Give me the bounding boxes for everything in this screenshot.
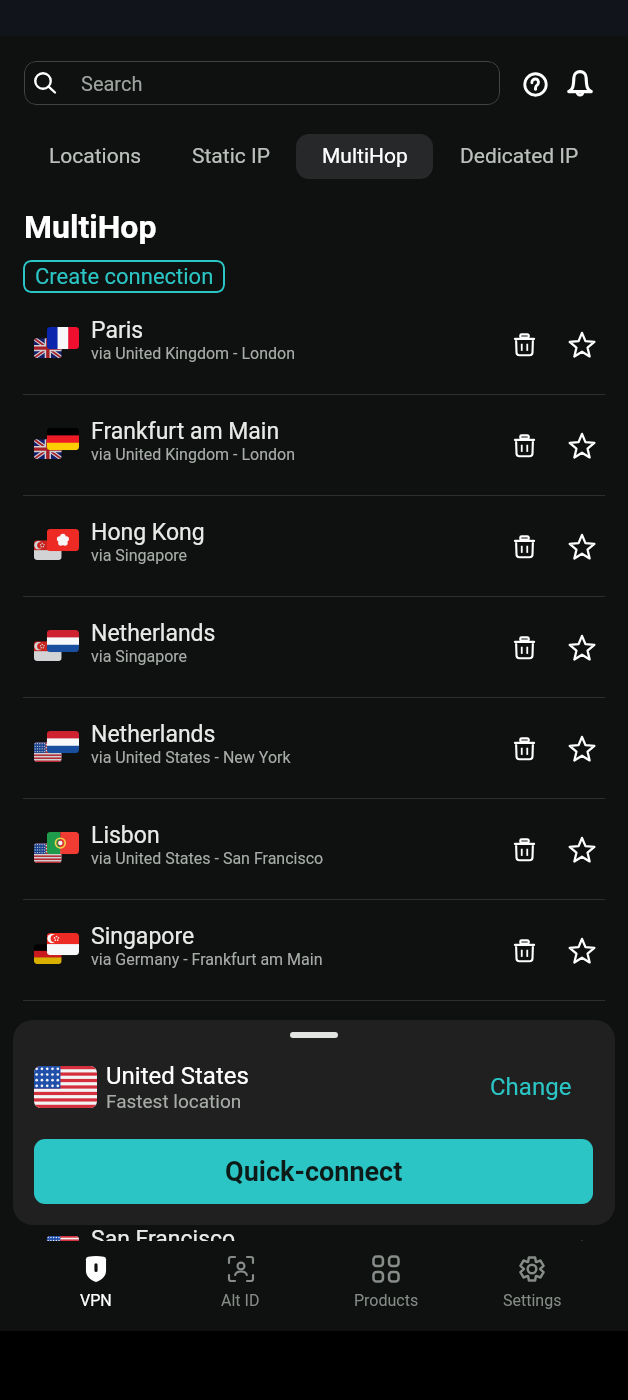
button[interactable]: San Francisco	[0, 1203, 628, 1303]
staticText: Netherlands	[91, 721, 216, 748]
button[interactable]: Netherlands	[0, 698, 628, 798]
staticText: Fastest location	[106, 1090, 242, 1112]
button[interactable]: Paris	[0, 294, 628, 394]
staticText: Dedicated IP	[460, 144, 579, 169]
staticText: MultiHop	[24, 208, 157, 246]
staticText: Alt ID	[221, 1291, 260, 1310]
staticText: Lisbon	[91, 822, 160, 849]
staticText: MultiHop	[322, 144, 408, 169]
staticText: Paris	[91, 317, 144, 344]
staticText: Hong Kong	[91, 519, 205, 546]
staticText: via United States - San Francisco	[91, 849, 324, 868]
staticText: United States	[106, 1062, 249, 1090]
button[interactable]: Delete	[501, 826, 548, 873]
button[interactable]: Delete	[501, 927, 548, 974]
button[interactable]: MultiHop	[296, 134, 433, 179]
button[interactable]: Settings	[459, 1241, 605, 1331]
button[interactable]: Create connection	[23, 260, 225, 293]
button[interactable]: Alt ID	[168, 1241, 313, 1331]
button[interactable]: Favourite	[558, 624, 605, 671]
button[interactable]: Favourite	[558, 422, 605, 469]
button[interactable]: Favourite	[558, 826, 605, 873]
staticText: Static IP	[192, 144, 270, 169]
staticText: Frankfurt am Main	[91, 418, 280, 445]
button[interactable]: Netherlands	[0, 597, 628, 697]
button[interactable]: Favourite	[558, 927, 605, 974]
button[interactable]: Delete	[501, 1230, 548, 1277]
staticText: Quick-connect	[225, 1156, 403, 1188]
staticText: Singapore	[91, 923, 195, 950]
button[interactable]: Stockholm	[0, 1001, 628, 1101]
button[interactable]: Toronto	[0, 1102, 628, 1202]
button[interactable]: Static IP	[181, 134, 281, 179]
staticText: Search	[81, 72, 143, 95]
button[interactable]: Delete	[501, 422, 548, 469]
button[interactable]: Delete	[501, 624, 548, 671]
staticText: Toronto	[91, 1125, 171, 1152]
button[interactable]: VPN	[23, 1241, 168, 1331]
button[interactable]: Singapore	[0, 900, 628, 1000]
button[interactable]: Frankfurt am Main	[0, 395, 628, 495]
staticText: San Francisco	[91, 1226, 236, 1253]
button[interactable]: Change	[482, 1065, 580, 1109]
button[interactable]: Products	[313, 1241, 459, 1331]
button[interactable]: Search	[24, 61, 500, 105]
staticText: VPN	[80, 1291, 112, 1310]
button[interactable]: Delete	[501, 321, 548, 368]
button[interactable]: Favourite	[558, 321, 605, 368]
button[interactable]: Hong Kong	[0, 496, 628, 596]
button[interactable]: Help	[516, 65, 554, 103]
button[interactable]: Favourite	[558, 1129, 605, 1176]
staticText: via United Kingdom - London	[91, 1152, 295, 1171]
staticText: via Singapore	[91, 647, 188, 666]
staticText: Products	[354, 1291, 419, 1310]
staticText: Settings	[503, 1291, 562, 1310]
button[interactable]: Delete	[501, 725, 548, 772]
staticText: via United States - New York	[91, 748, 291, 767]
button[interactable]: Quick-connect	[34, 1139, 593, 1204]
staticText: Locations	[49, 144, 142, 169]
button[interactable]: Delete	[501, 1129, 548, 1176]
staticText: Netherlands	[91, 620, 216, 647]
staticText: via Singapore	[91, 546, 188, 565]
button[interactable]: Locations	[40, 134, 150, 179]
button[interactable]: Delete	[501, 523, 548, 570]
staticText: via United Kingdom - London	[91, 445, 295, 464]
staticText: Change	[490, 1073, 572, 1101]
staticText: via Netherlands - Amsterdam	[91, 1051, 298, 1070]
button[interactable]: Notifications	[561, 64, 599, 102]
staticText: via Germany - Frankfurt am Main	[91, 950, 323, 969]
staticText: via Germany - Frankfurt am Main	[91, 1253, 323, 1272]
staticText: via United Kingdom - London	[91, 344, 295, 363]
button[interactable]: Favourite	[558, 523, 605, 570]
button[interactable]: Dedicated IP	[450, 134, 588, 179]
button[interactable]: Lisbon	[0, 799, 628, 899]
staticText: Create connection	[35, 264, 214, 290]
button[interactable]: Favourite	[558, 725, 605, 772]
